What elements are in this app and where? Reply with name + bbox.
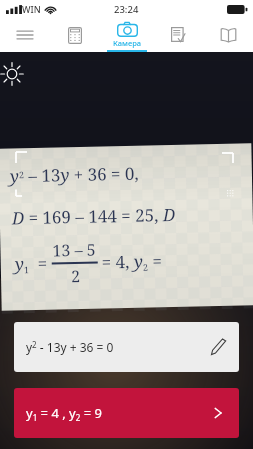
staticText: y2 - 13y + 36 = 0 xyxy=(26,339,114,355)
staticText: 2 xyxy=(71,265,80,287)
staticText: WIN xyxy=(22,3,41,15)
button[interactable]: Menu xyxy=(3,18,47,52)
button[interactable]: Book xyxy=(206,18,250,52)
staticText: D = 169 – 144 = 25, D xyxy=(11,203,176,229)
button[interactable]: Камера xyxy=(104,18,150,52)
staticText: 13 – 5 xyxy=(52,239,97,261)
staticText: Камера xyxy=(113,38,142,48)
staticText: y2 – 13y + 36 = 0, xyxy=(10,162,139,187)
button[interactable]: Brightness xyxy=(0,62,24,86)
staticText: y1 = xyxy=(14,252,48,276)
button[interactable]: y2 - 13y + 36 = 0 xyxy=(14,322,239,372)
staticText: = 4, y2 = xyxy=(101,249,167,275)
button[interactable]: y1 = 4 , y2 = 9 xyxy=(14,388,239,438)
staticText: 23:24 xyxy=(114,3,139,16)
button[interactable]: Notes xyxy=(156,18,200,52)
staticText: y1 = 4 , y2 = 9 xyxy=(26,404,102,423)
button[interactable]: Calculator xyxy=(53,18,97,52)
